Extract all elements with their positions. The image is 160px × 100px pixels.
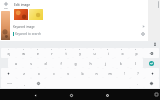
button[interactable]: n (89, 68, 103, 78)
staticText: ?123 (7, 82, 12, 85)
staticText: 7 (93, 48, 95, 50)
button[interactable]: Key (144, 78, 159, 88)
staticText: 9 (121, 48, 123, 50)
button[interactable]: Key (31, 78, 45, 88)
button[interactable]: m (103, 68, 117, 78)
button[interactable]: f (53, 58, 68, 68)
button[interactable]: Key (1, 68, 16, 78)
button[interactable]: Settings (141, 32, 145, 36)
button[interactable]: Enter (144, 58, 159, 68)
button[interactable]: u (87, 48, 101, 58)
staticText: y (79, 51, 81, 56)
staticText: b (81, 71, 84, 76)
button[interactable]: Keyboard (155, 93, 158, 96)
button[interactable] (29, 9, 43, 20)
staticText: 0 (135, 48, 137, 50)
staticText: k (120, 61, 122, 66)
staticText: x (38, 71, 40, 76)
button[interactable]: Keyword to search (11, 30, 148, 38)
button[interactable] (14, 9, 28, 20)
staticText: s (30, 61, 32, 66)
button[interactable]: , (17, 78, 31, 88)
button[interactable]: b (75, 68, 89, 78)
button[interactable]: Add (3, 1, 9, 7)
staticText: q (7, 51, 10, 56)
button[interactable]: k (113, 58, 128, 68)
button[interactable]: h (83, 58, 98, 68)
staticText: 2 (23, 48, 25, 50)
button[interactable]: e (31, 48, 45, 58)
staticText: r (51, 51, 53, 56)
staticText: j (105, 61, 106, 66)
staticText: 8 (107, 48, 109, 50)
button[interactable]: Key (143, 48, 159, 58)
button[interactable]: w (16, 48, 31, 58)
button[interactable]: p (129, 48, 143, 58)
staticText: i (108, 51, 109, 56)
staticText: d (44, 61, 47, 66)
staticText: 6 (79, 48, 81, 50)
staticText: a (15, 61, 17, 66)
button[interactable]: d (38, 58, 53, 68)
staticText: w (22, 51, 25, 56)
staticText: Keyword image (13, 25, 35, 29)
button[interactable]: Back (31, 91, 39, 99)
staticText: Edit (4, 7, 8, 10)
button[interactable]: g (68, 58, 83, 68)
staticText: 3 (37, 48, 39, 50)
staticText: n (95, 71, 98, 76)
staticText: z (23, 71, 25, 76)
staticText: 1 (8, 48, 10, 50)
button[interactable]: y (73, 48, 87, 58)
button[interactable]: q (1, 48, 16, 58)
staticText: l (135, 61, 136, 66)
staticText: , (24, 81, 25, 86)
staticText: 4 (51, 48, 53, 50)
button[interactable]: Voice input (153, 42, 157, 46)
button[interactable]: i (101, 48, 115, 58)
staticText: o (121, 51, 124, 56)
button[interactable]: Edit image (12, 2, 142, 23)
button[interactable]: r (45, 48, 59, 58)
button[interactable]: ?123 (1, 78, 17, 88)
button[interactable]: l (128, 58, 143, 68)
staticText: p (135, 51, 138, 56)
button[interactable]: t (59, 48, 73, 58)
staticText: g (74, 61, 77, 66)
button[interactable]: ? (131, 68, 145, 78)
button[interactable]: a (8, 58, 23, 68)
button[interactable]: o (115, 48, 129, 58)
staticText: Edit image (14, 3, 31, 7)
button[interactable]: Key (145, 68, 159, 78)
button[interactable]: x (31, 68, 46, 78)
staticText: u (93, 51, 96, 56)
button[interactable]: Recents (103, 91, 111, 99)
button[interactable]: ! (117, 68, 131, 78)
button[interactable] (1, 11, 10, 40)
button[interactable]: j (98, 58, 113, 68)
staticText: ! (124, 71, 125, 76)
staticText: f (60, 61, 62, 66)
staticText: e (37, 51, 39, 56)
staticText: h (89, 61, 92, 66)
button[interactable]: s (23, 58, 38, 68)
staticText: c (53, 71, 55, 76)
button[interactable]: c (46, 68, 61, 78)
staticText: m (108, 71, 112, 76)
staticText: v (67, 71, 69, 76)
button[interactable]: Keyword image (11, 23, 148, 30)
staticText: . (137, 81, 138, 86)
staticText: Keyword to search (15, 32, 41, 36)
button[interactable]: Home (67, 91, 75, 99)
staticText: 5 (65, 48, 67, 50)
staticText: ? (137, 71, 139, 76)
button[interactable]: z (16, 68, 31, 78)
button[interactable]: v (61, 68, 75, 78)
staticText: t (65, 51, 67, 56)
